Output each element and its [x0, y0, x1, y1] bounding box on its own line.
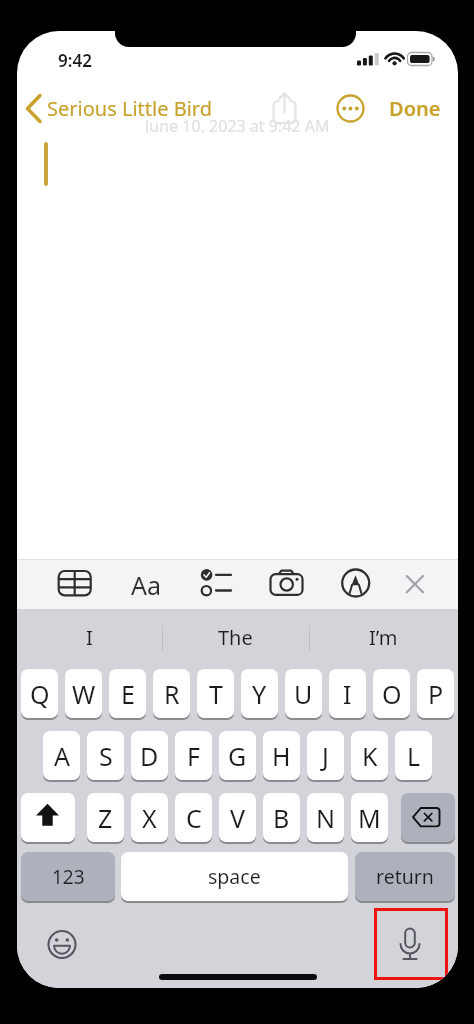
staticText: N [316, 801, 336, 835]
button[interactable]: space [121, 852, 348, 901]
button[interactable]: Aa [122, 568, 170, 599]
button[interactable] [267, 91, 303, 127]
button[interactable] [393, 926, 428, 966]
staticText: A [54, 739, 70, 773]
button[interactable]: 123 [21, 852, 115, 901]
staticText: K [362, 739, 378, 773]
button[interactable]: I [329, 669, 366, 718]
button[interactable]: Serious Little Bird [47, 94, 247, 123]
button[interactable] [405, 567, 427, 601]
staticText: I [86, 624, 93, 651]
button[interactable]: X [131, 793, 168, 842]
button[interactable]: S [87, 731, 124, 780]
staticText: J [322, 739, 329, 773]
staticText: P [428, 677, 444, 711]
staticText: Serious Little Bird [47, 95, 212, 122]
button[interactable]: J [307, 731, 344, 780]
button[interactable]: G [219, 731, 256, 780]
button[interactable]: Q [21, 669, 58, 718]
staticText: O [382, 677, 402, 711]
button[interactable]: Y [241, 669, 278, 718]
staticText: D [140, 739, 159, 773]
staticText: C [186, 801, 202, 835]
button[interactable]: A [43, 731, 80, 780]
staticText: G [228, 739, 247, 773]
staticText: R [164, 677, 180, 711]
button[interactable] [401, 793, 455, 842]
staticText: M [358, 801, 381, 835]
button[interactable] [21, 793, 75, 842]
staticText: E [121, 677, 135, 711]
button[interactable]: I’m [309, 608, 458, 667]
button[interactable]: H [263, 731, 300, 780]
button[interactable]: E [109, 669, 146, 718]
staticText: F [187, 739, 200, 773]
button[interactable] [339, 567, 375, 601]
button[interactable]: R [153, 669, 190, 718]
button[interactable]: L [395, 731, 432, 780]
staticText: S [99, 739, 113, 773]
staticText: June 10, 2023 at 9:42 AM [145, 115, 330, 133]
button[interactable]: V [219, 793, 256, 842]
staticText: I’m [369, 624, 398, 651]
staticText: B [273, 801, 290, 835]
button[interactable]: return [355, 852, 455, 901]
staticText: I [343, 677, 352, 711]
button[interactable]: O [373, 669, 410, 718]
staticText: The [218, 624, 253, 651]
staticText: Aa [131, 568, 162, 599]
staticText: 9:42 [58, 49, 92, 72]
staticText: Q [30, 677, 50, 711]
staticText: H [272, 739, 291, 773]
button[interactable]: I [17, 608, 162, 667]
button[interactable]: M [351, 793, 388, 842]
button[interactable]: Z [87, 793, 124, 842]
button[interactable]: The [162, 608, 309, 667]
button[interactable]: D [131, 731, 168, 780]
staticText: Z [98, 801, 113, 835]
button[interactable]: P [417, 669, 454, 718]
staticText: W [72, 677, 96, 711]
button[interactable]: B [263, 793, 300, 842]
button[interactable] [200, 567, 236, 601]
button[interactable]: T [197, 669, 234, 718]
staticText: space [208, 863, 261, 890]
staticText: 123 [52, 864, 85, 890]
button[interactable]: N [307, 793, 344, 842]
staticText: V [230, 801, 246, 835]
button[interactable] [46, 928, 79, 961]
staticText: Y [252, 677, 267, 711]
button[interactable] [57, 567, 93, 601]
button[interactable]: U [285, 669, 322, 718]
staticText: X [142, 801, 157, 835]
button[interactable] [335, 91, 367, 127]
staticText: T [209, 677, 223, 711]
staticText: return [376, 863, 434, 890]
button[interactable] [268, 567, 304, 601]
button[interactable]: F [175, 731, 212, 780]
staticText: Done [389, 95, 441, 122]
button[interactable]: C [175, 793, 212, 842]
button[interactable]: W [65, 669, 102, 718]
button[interactable]: K [351, 731, 388, 780]
staticText: U [294, 677, 313, 711]
staticText: L [407, 739, 421, 773]
button[interactable]: Done [380, 94, 450, 123]
